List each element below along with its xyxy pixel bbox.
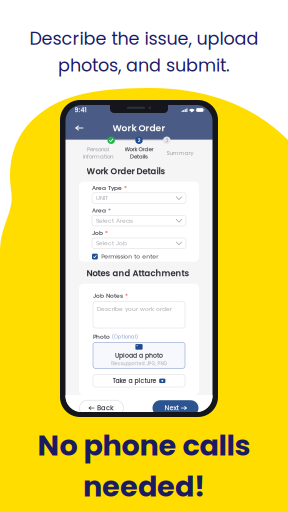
staticText: 9:41: [74, 106, 86, 114]
staticText: Files supported: JPG, PNG: [110, 360, 167, 367]
staticText: Describe your work order: [97, 305, 172, 313]
staticText: Take a picture: [113, 376, 157, 385]
staticText: Work Order Details: [86, 165, 165, 177]
staticText: Area: [92, 206, 106, 214]
staticText: Next: [164, 403, 178, 413]
staticText: Summary: [166, 149, 193, 157]
staticText: photos, and submit.: [58, 53, 230, 78]
staticText: Area Type: [92, 184, 122, 192]
staticText: Photo: [93, 333, 110, 341]
button[interactable]: UNIT: [92, 193, 186, 203]
button[interactable]: Next: [152, 400, 198, 416]
staticText: Select Areas: [96, 216, 133, 225]
staticText: *: [123, 292, 128, 300]
button[interactable]: Select Job: [92, 238, 186, 248]
staticText: Notes and Attachments: [86, 267, 189, 279]
staticText: Permission to enter: [101, 252, 158, 261]
staticText: *: [106, 206, 111, 214]
staticText: UNIT: [96, 194, 108, 202]
button[interactable]: Take a picture: [93, 375, 185, 387]
button[interactable]: Upload a photo: [93, 342, 185, 368]
button[interactable]: Select Areas: [92, 215, 186, 226]
staticText: 2: [137, 136, 140, 144]
staticText: *: [103, 229, 108, 237]
staticText: Personal: [87, 146, 109, 153]
staticText: 3: [165, 136, 168, 144]
staticText: Describe the issue, upload: [29, 26, 258, 51]
staticText: *: [122, 184, 127, 192]
button[interactable]: Back: [79, 400, 123, 416]
button[interactable]: Permission to enter: [92, 254, 98, 259]
staticText: (Optional): [112, 333, 138, 340]
button[interactable]: Back: [72, 121, 86, 134]
staticText: Job: [92, 229, 103, 237]
staticText: needed!: [83, 466, 205, 507]
staticText: Select Job: [96, 239, 127, 247]
staticText: Job Notes: [93, 292, 123, 300]
staticText: Work Order: [124, 146, 153, 153]
staticText: Details: [130, 153, 148, 160]
staticText: Back: [97, 403, 114, 413]
staticText: Upload a photo: [115, 351, 163, 360]
staticText: No phone calls: [37, 425, 250, 465]
staticText: Work Order: [112, 122, 165, 134]
staticText: Information: [83, 153, 113, 160]
